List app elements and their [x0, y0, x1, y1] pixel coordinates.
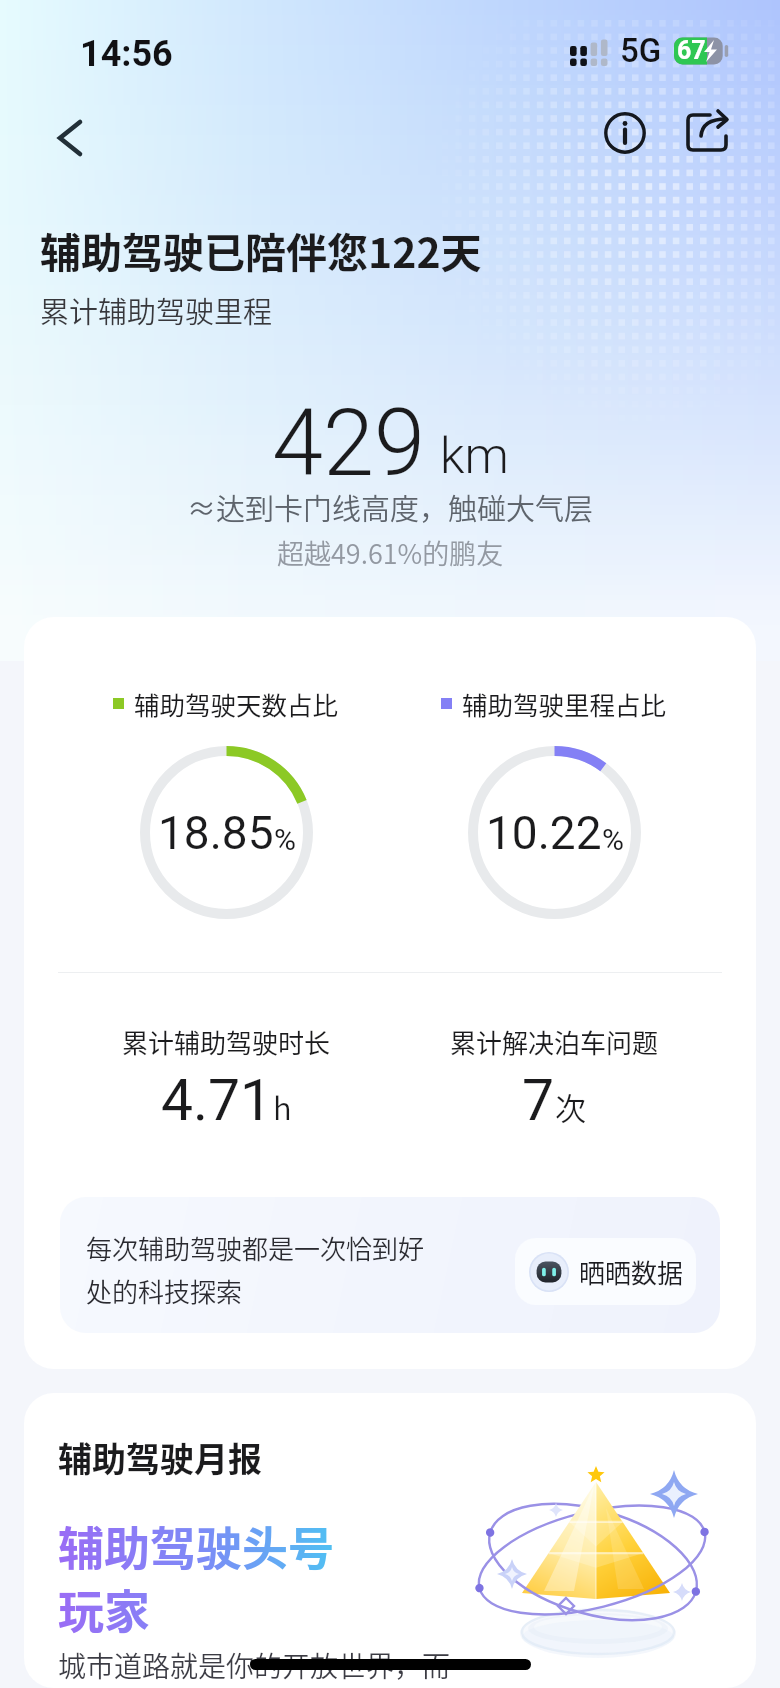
staticText: 5G [620, 31, 662, 70]
staticText: 晒晒数据 [579, 1253, 684, 1291]
staticText: 10.22 [486, 806, 602, 860]
button[interactable]: Share [680, 105, 736, 161]
staticText: h [273, 1084, 292, 1129]
staticText: 7 [522, 1067, 555, 1134]
staticText: 辅助驾驶头号 玩家 [58, 1512, 334, 1641]
staticText: 累计辅助驾驶里程 [40, 289, 273, 331]
staticText: 18.85 [158, 806, 274, 860]
staticText: % [602, 822, 624, 857]
staticText: 累计解决泊车问题 [450, 1023, 659, 1061]
staticText: 每次辅助驾驶都是一次恰到好 处的科技探索 [86, 1229, 425, 1310]
button[interactable]: Info [595, 103, 655, 163]
staticText: 67 [677, 36, 706, 65]
staticText: 14:56 [80, 33, 173, 75]
staticText: 辅助驾驶里程占比 [462, 685, 667, 722]
staticText: 4.71 [161, 1067, 273, 1134]
staticText: km [440, 427, 509, 486]
staticText: 次 [555, 1084, 586, 1129]
button[interactable]: 晒晒数据 [515, 1238, 696, 1305]
staticText: ≈达到卡门线高度，触碰大气层 [187, 486, 594, 528]
staticText: 累计辅助驾驶时长 [122, 1023, 331, 1061]
staticText: 429 [272, 390, 426, 498]
staticText: % [274, 822, 296, 857]
staticText: 辅助驾驶已陪伴您122天 [40, 220, 482, 279]
staticText: 城市道路就是你的开放世界，而 [58, 1645, 451, 1686]
staticText: 辅助驾驶月报 [58, 1433, 262, 1482]
staticText: 辅助驾驶天数占比 [134, 685, 339, 722]
button[interactable]: Back [42, 110, 98, 166]
staticText: 超越49.61%的鹏友 [277, 533, 504, 572]
